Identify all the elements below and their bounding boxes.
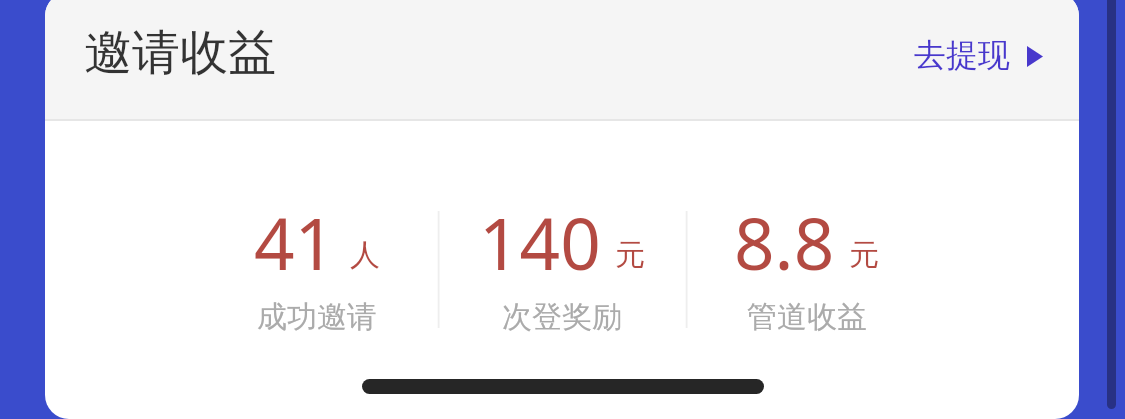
button[interactable]: 去提现	[914, 36, 1043, 76]
staticText: 元	[849, 236, 879, 274]
staticText: 140	[479, 194, 601, 291]
staticText: 邀请收益	[84, 23, 276, 83]
staticText: 次登奖励	[502, 298, 622, 336]
staticText: 去提现	[914, 35, 1010, 75]
button[interactable]: 41	[195, 194, 439, 336]
other: Go to withdraw	[1027, 46, 1043, 67]
button[interactable]: 140	[439, 194, 684, 336]
staticText: 8.8	[734, 194, 835, 291]
staticText: 人	[350, 236, 380, 274]
button[interactable]: 8.8	[684, 194, 929, 336]
staticText: 元	[615, 236, 645, 274]
staticText: 管道收益	[747, 298, 867, 336]
staticText: 成功邀请	[257, 298, 377, 336]
staticText: 41	[254, 194, 336, 291]
